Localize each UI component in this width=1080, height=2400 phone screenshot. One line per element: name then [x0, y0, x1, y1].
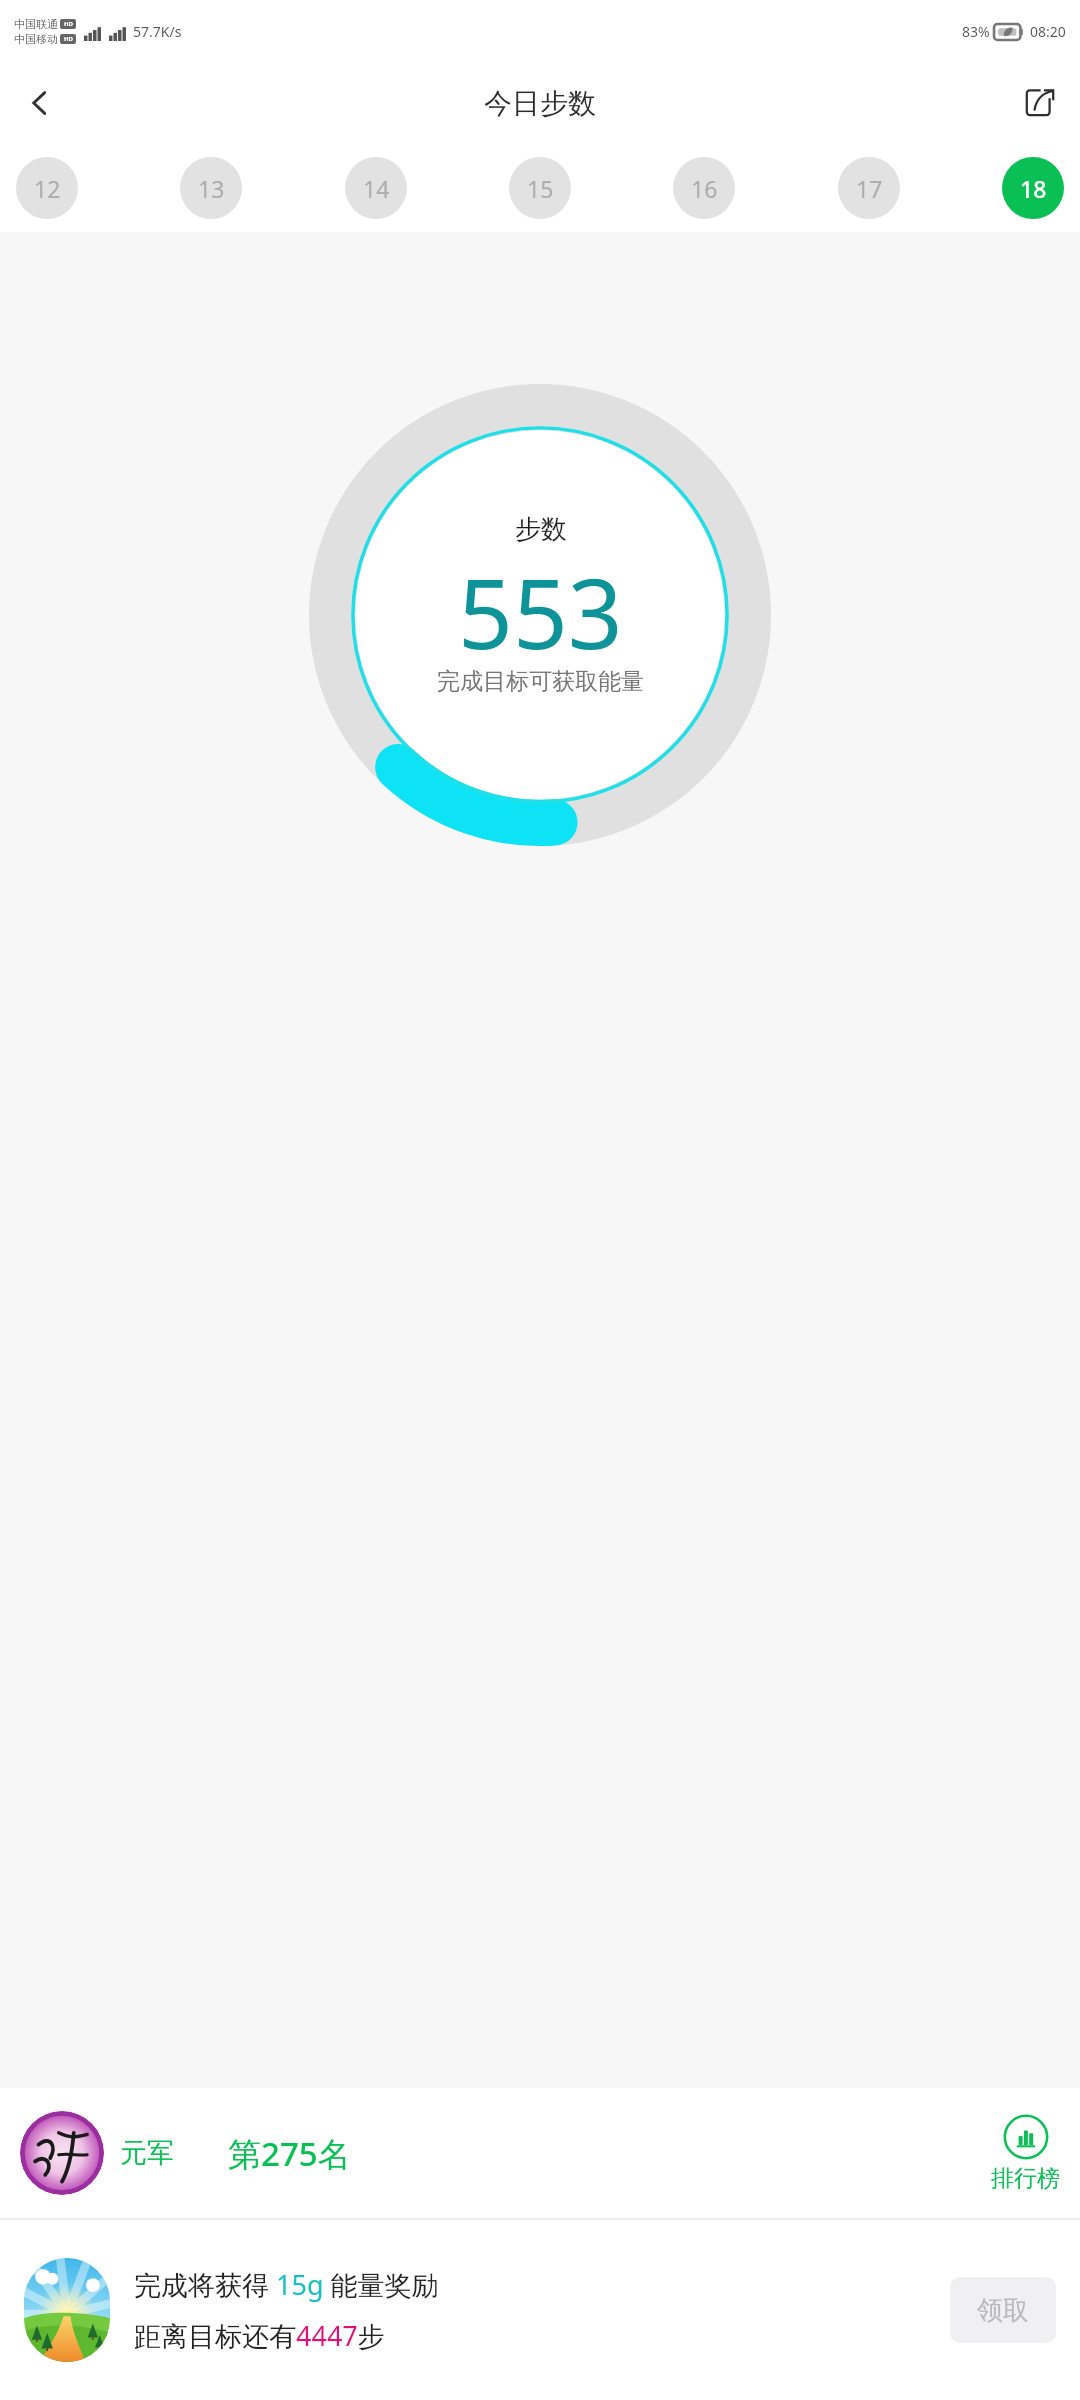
button[interactable]: Share	[1000, 63, 1080, 143]
staticText: 今日步数	[484, 86, 596, 121]
staticText: 完成将获得 15g 能量奖励	[134, 2266, 439, 2303]
staticText: 步数	[515, 513, 567, 546]
button[interactable]: 12	[16, 157, 78, 219]
staticText: 完成目标可获取能量	[437, 667, 644, 696]
staticText: 13	[198, 173, 225, 204]
staticText: 553	[458, 546, 623, 677]
staticText: 17	[856, 173, 883, 204]
staticText: 12	[34, 173, 61, 204]
staticText: 中国移动	[14, 32, 58, 46]
staticText: 83%	[962, 22, 990, 41]
staticText: 排行榜	[991, 2164, 1060, 2193]
staticText: 08:20	[1030, 22, 1066, 41]
button[interactable]: 13	[180, 157, 242, 219]
staticText: 18	[1020, 173, 1047, 204]
staticText: 57.7K/s	[133, 22, 182, 41]
staticText: 16	[691, 173, 718, 204]
staticText: 距离目标还有4447步	[134, 2317, 385, 2354]
staticText: 中国联通	[14, 17, 58, 31]
button[interactable]: 排行榜	[991, 2114, 1060, 2193]
button[interactable]: 元军	[20, 2111, 174, 2195]
staticText: 领取	[977, 2294, 1029, 2327]
staticText: HD	[64, 35, 73, 43]
button[interactable]: 14	[345, 157, 407, 219]
button[interactable]: 17	[838, 157, 900, 219]
staticText: 第275名	[228, 2131, 351, 2176]
button[interactable]: Back	[0, 63, 80, 143]
staticText: 15	[527, 173, 554, 204]
button[interactable]: 16	[673, 157, 735, 219]
button[interactable]: 18	[1002, 157, 1064, 219]
staticText: 14	[363, 173, 390, 204]
button[interactable]: 领取	[950, 2277, 1056, 2343]
staticText: 元军	[120, 2136, 174, 2170]
staticText: HD	[64, 20, 73, 28]
button[interactable]: 15	[509, 157, 571, 219]
